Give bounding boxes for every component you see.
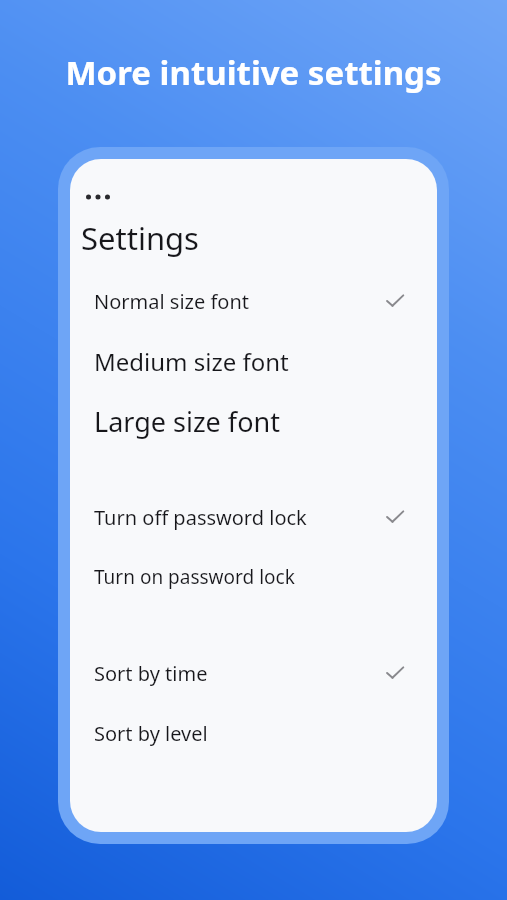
button[interactable]: Turn on password lock [70,547,437,607]
staticText: Sort by level [94,720,208,747]
button[interactable]: Large size font [70,391,437,451]
staticText: Turn on password lock [94,564,295,590]
button[interactable]: Sort by time [70,643,437,703]
staticText: Settings [81,217,199,259]
staticText: Turn off password lock [94,504,307,531]
staticText: More intuitive settings [14,50,493,95]
button[interactable]: Medium size font [70,331,437,391]
staticText: Large size font [94,403,280,440]
staticText: Sort by time [94,660,208,687]
staticText: Normal size font [94,288,250,315]
button[interactable]: Normal size font [70,271,437,331]
button[interactable]: More options [78,177,118,217]
staticText: Medium size font [94,345,289,378]
button[interactable]: Turn off password lock [70,487,437,547]
button[interactable]: Sort by level [70,703,437,763]
